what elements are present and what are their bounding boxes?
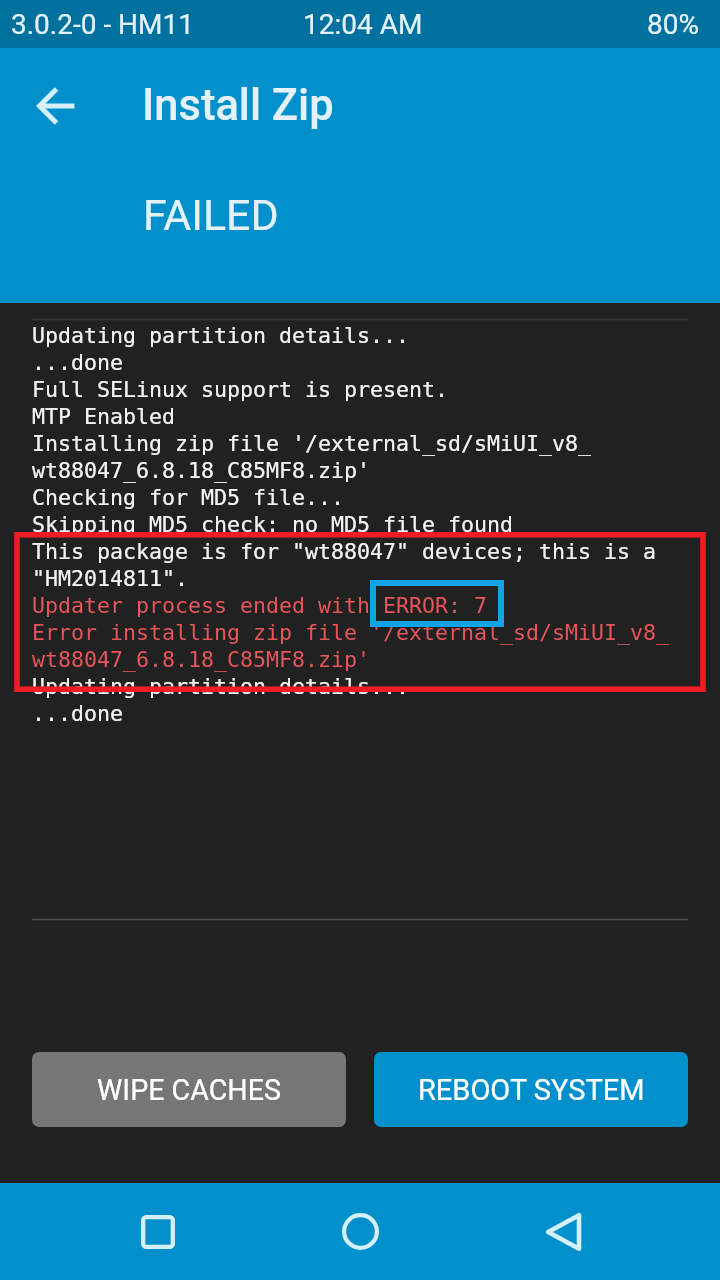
staticText: wt88047_6.8.18_C85MF8.zip': [32, 645, 371, 672]
staticText: WIPE CACHES: [97, 1073, 281, 1107]
staticText: This package is for "wt88047" devices; t…: [32, 537, 657, 564]
button[interactable]: REBOOT SYSTEM: [374, 1052, 688, 1127]
button[interactable]: Home: [310, 1183, 410, 1280]
staticText: 80%: [647, 8, 699, 41]
staticText: Full SELinux support is present.: [32, 375, 449, 402]
staticText: ...done: [32, 699, 124, 726]
staticText: Updating partition details...: [32, 672, 410, 699]
staticText: Install Zip: [142, 80, 334, 131]
staticText: MTP Enabled: [32, 402, 176, 429]
staticText: Installing zip file '/external_sd/sMiUI_…: [32, 429, 592, 456]
staticText: "HM2014811".: [32, 564, 189, 591]
button[interactable]: Recent apps: [105, 1183, 205, 1280]
staticText: ...done: [32, 348, 124, 375]
staticText: REBOOT SYSTEM: [418, 1073, 645, 1107]
staticText: 12:04 AM: [303, 8, 423, 41]
staticText: FAILED: [143, 190, 279, 240]
staticText: wt88047_6.8.18_C85MF8.zip': [32, 456, 371, 483]
staticText: Checking for MD5 file...: [32, 483, 345, 510]
staticText: Error installing zip file '/external_sd/…: [32, 618, 670, 645]
button[interactable]: WIPE CACHES: [32, 1052, 346, 1127]
staticText: Skipping MD5 check: no MD5 file found: [32, 510, 514, 537]
button[interactable]: Back: [27, 75, 91, 139]
staticText: Updater process ended with ERROR: 7: [32, 591, 488, 618]
staticText: 3.0.2-0 - HM11: [11, 8, 194, 41]
staticText: Updating partition details...: [32, 321, 410, 348]
button[interactable]: Back: [515, 1183, 615, 1280]
